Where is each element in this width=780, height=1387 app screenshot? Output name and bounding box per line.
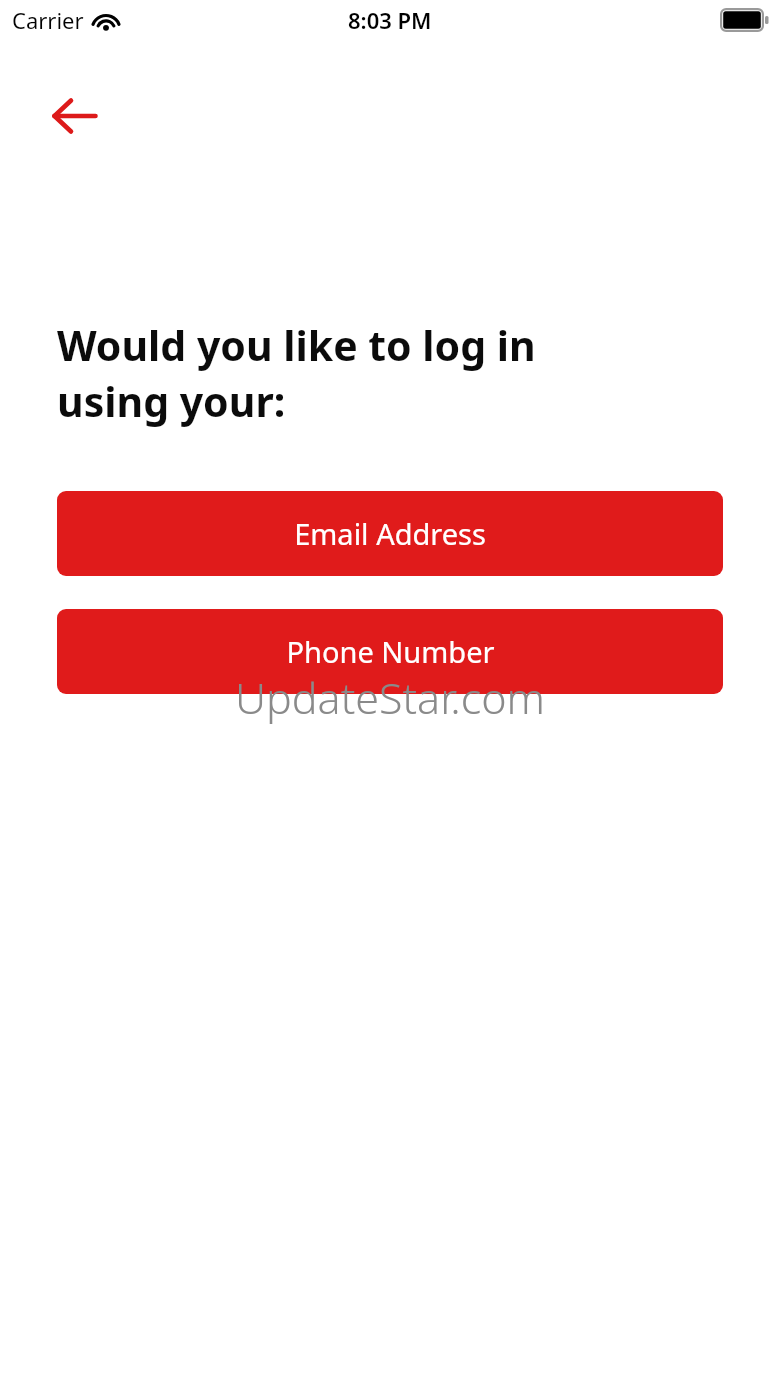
staticText: UpdateStar.com: [235, 668, 545, 727]
staticText: Carrier: [12, 5, 84, 35]
staticText: 8:03 PM: [348, 5, 432, 35]
staticText: Email Address: [294, 514, 486, 553]
button[interactable]: Email Address: [57, 491, 723, 576]
button[interactable]: Back: [40, 90, 110, 142]
button[interactable]: Phone Number: [57, 609, 723, 694]
staticText: Would you like to log in: [57, 317, 536, 373]
staticText: using your:: [57, 373, 286, 429]
staticText: Phone Number: [286, 632, 495, 671]
